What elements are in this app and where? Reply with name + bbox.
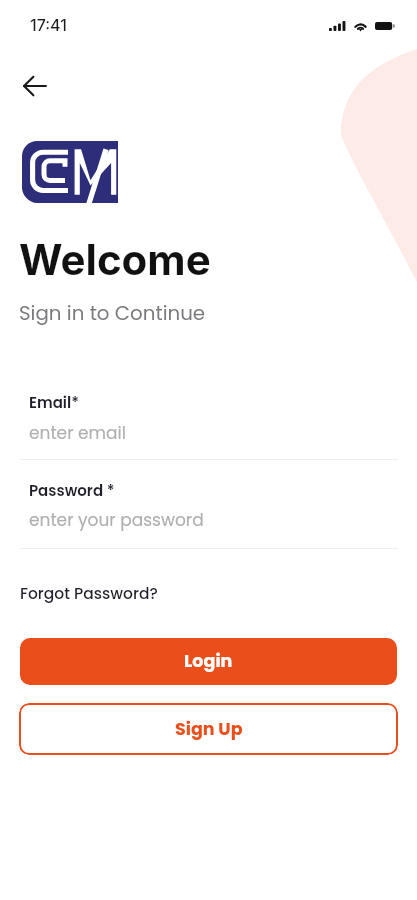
button[interactable]: Sign Up xyxy=(19,703,398,755)
button[interactable]: enter your password xyxy=(20,506,398,538)
staticText: Email* xyxy=(29,392,79,413)
staticText: Password * xyxy=(29,480,115,501)
staticText: Welcome xyxy=(19,234,211,285)
button[interactable]: Login xyxy=(20,638,397,685)
staticText: Forgot Password? xyxy=(20,583,158,605)
button[interactable]: Back xyxy=(16,66,56,106)
staticText: enter your password xyxy=(29,508,204,532)
button[interactable]: enter email xyxy=(20,419,398,451)
staticText: enter email xyxy=(29,421,126,445)
staticText: Sign Up xyxy=(175,717,243,742)
staticText: Login xyxy=(184,649,233,674)
staticText: Sign in to Continue xyxy=(19,299,206,327)
staticText: 17:41 xyxy=(30,15,67,34)
button[interactable]: Forgot Password? xyxy=(19,583,157,605)
